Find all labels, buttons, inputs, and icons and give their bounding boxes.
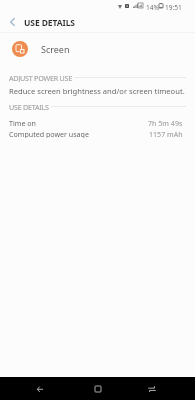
staticText: Computed power usage bbox=[9, 129, 89, 138]
staticText: Screen bbox=[41, 43, 70, 55]
button[interactable]: Screen bbox=[0, 33, 195, 64]
staticText: ADJUST POWER USE bbox=[9, 73, 72, 82]
staticText: USE DETAILS bbox=[24, 17, 75, 29]
button[interactable]: Navigate up bbox=[0, 13, 24, 32]
staticText: 7h 5m 49s bbox=[148, 118, 183, 127]
staticText: Time on bbox=[9, 118, 36, 127]
button[interactable]: Recent apps bbox=[125, 377, 179, 400]
staticText: 1157 mAh bbox=[149, 129, 183, 138]
staticText: 14% bbox=[146, 3, 160, 12]
staticText: USE DETAILS bbox=[9, 102, 49, 111]
button[interactable]: Back bbox=[13, 377, 67, 400]
staticText: Reduce screen brightness and/or screen t… bbox=[9, 86, 185, 96]
staticText: 19:51 bbox=[165, 3, 182, 12]
button[interactable]: Home bbox=[71, 377, 125, 400]
